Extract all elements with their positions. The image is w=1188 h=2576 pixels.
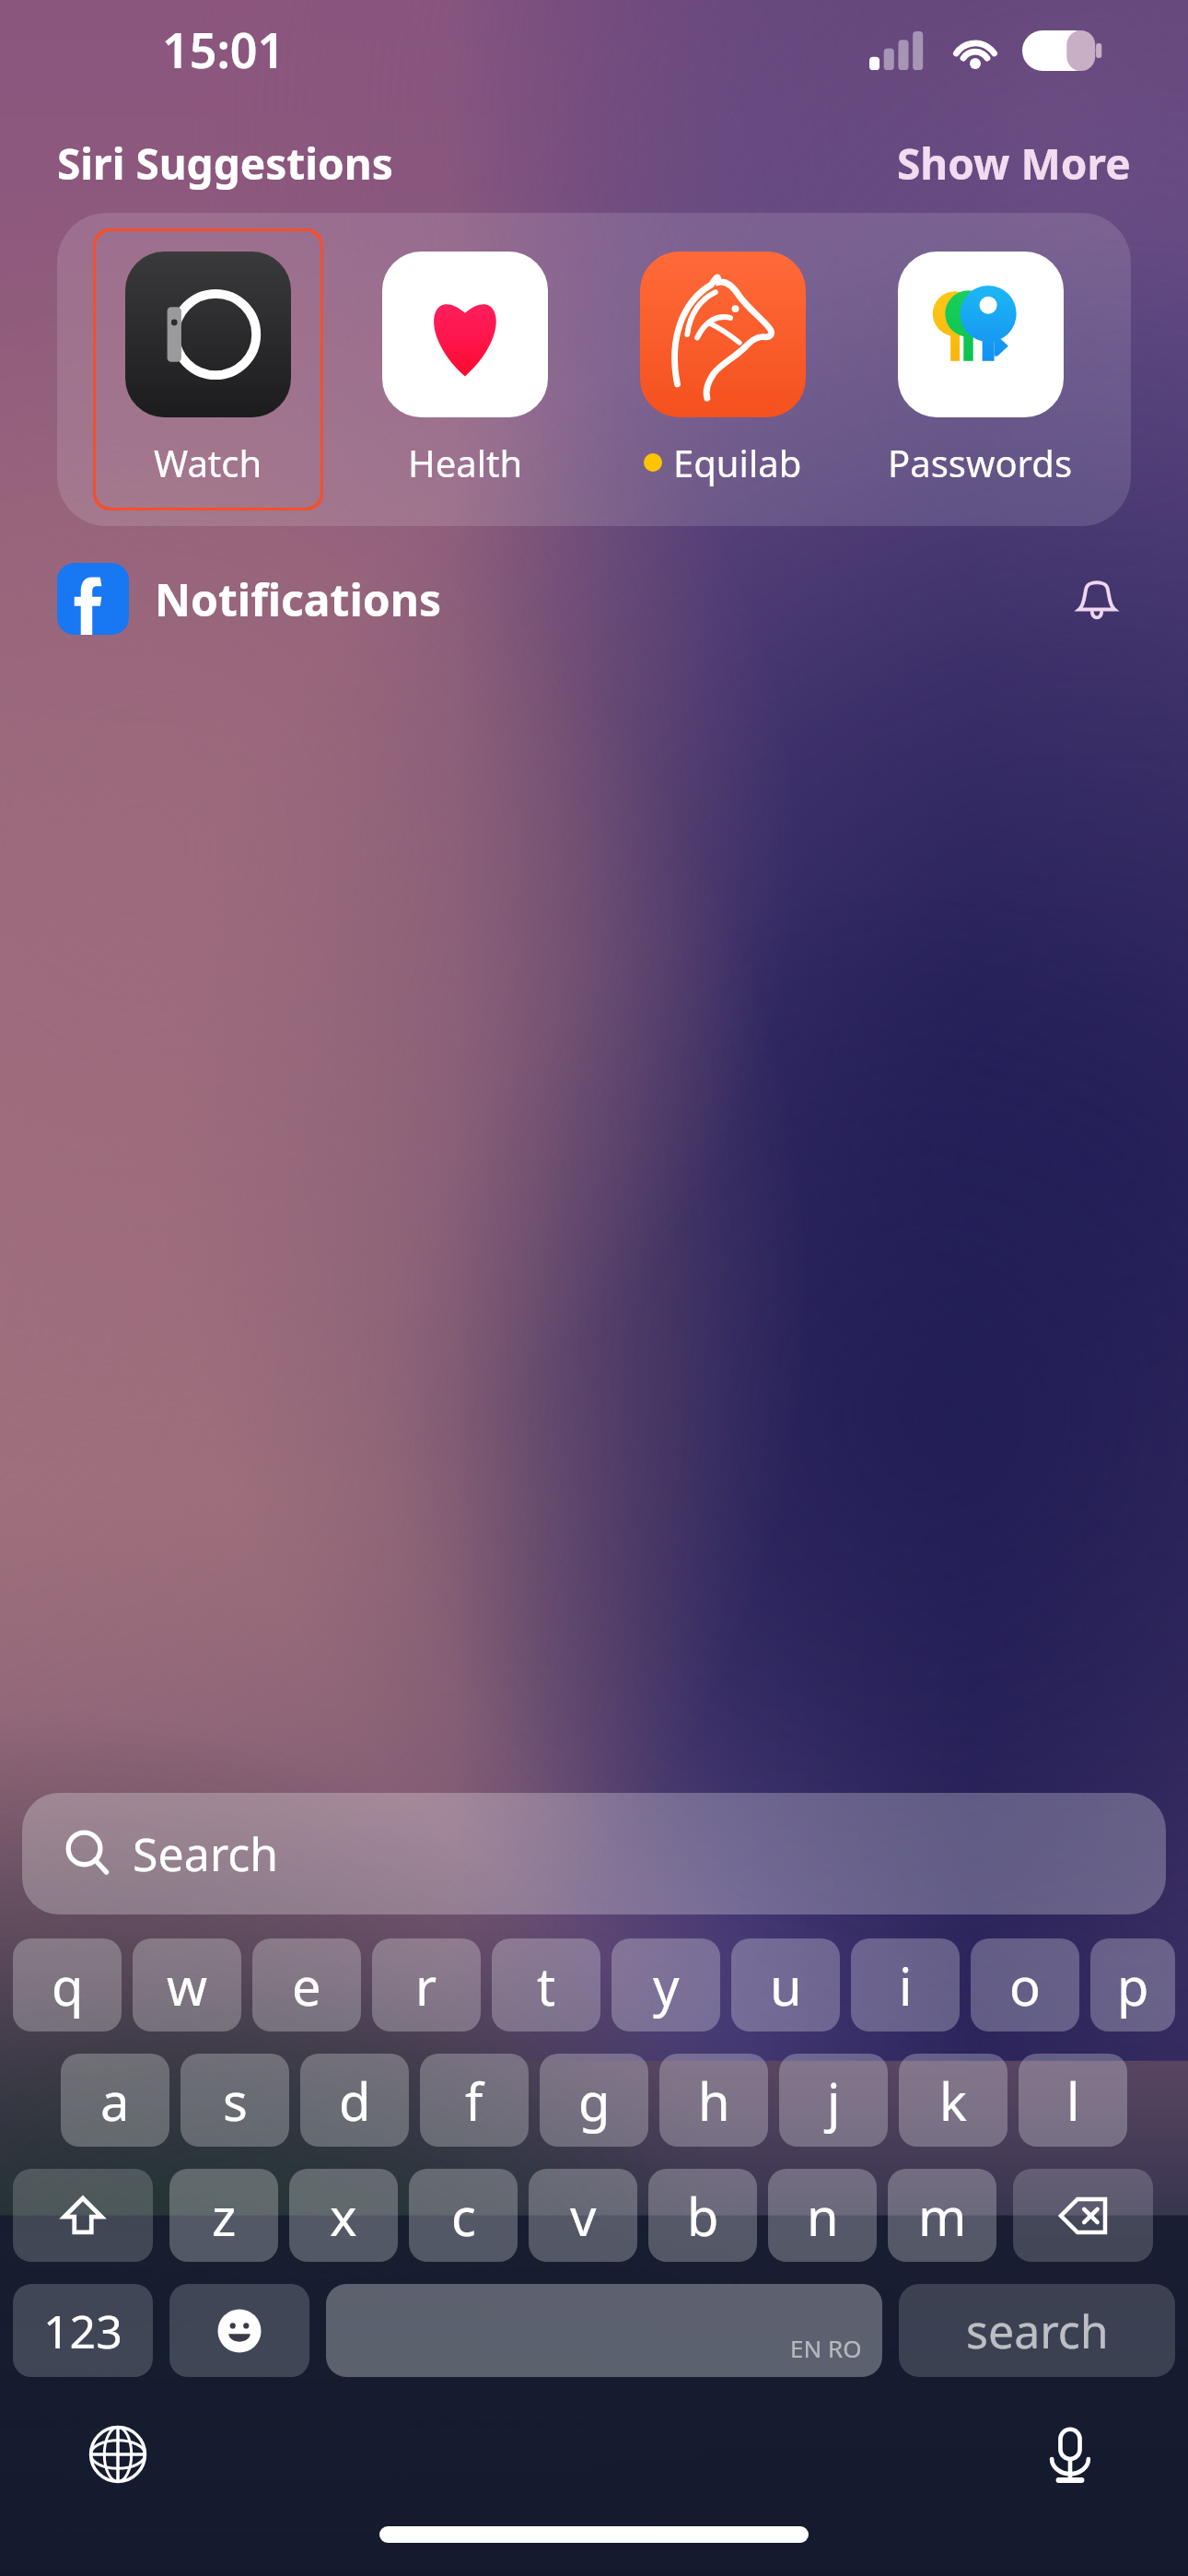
button[interactable]: n [768, 2169, 877, 2262]
staticText: v [570, 2181, 597, 2251]
staticText: q [52, 1950, 84, 2020]
button[interactable]: z [169, 2169, 278, 2262]
staticText: e [292, 1950, 321, 2020]
button[interactable]: m [888, 2169, 996, 2262]
staticText: Notifications [155, 569, 442, 629]
button[interactable]: Equilab [608, 228, 838, 510]
staticText: n [807, 2181, 839, 2251]
button[interactable]: c [409, 2169, 518, 2262]
button[interactable]: Passwords [865, 228, 1095, 510]
button[interactable]: q [13, 1938, 122, 2032]
staticText: Watch [154, 438, 262, 487]
button[interactable]: p [1090, 1938, 1175, 2032]
button[interactable]: i [851, 1938, 960, 2032]
staticText: g [578, 2066, 611, 2136]
button[interactable]: Health [350, 228, 580, 510]
button[interactable]: e [252, 1938, 361, 2032]
staticText: o [1009, 1950, 1041, 2020]
button[interactable]: k [899, 2054, 1007, 2147]
button[interactable]: y [611, 1938, 720, 2032]
staticText: w [167, 1950, 208, 2020]
staticText: EN RO [790, 2332, 862, 2364]
button[interactable]: f [420, 2054, 529, 2147]
button[interactable]: t [492, 1938, 600, 2032]
button[interactable]: Delete [1013, 2169, 1153, 2262]
staticText: i [899, 1950, 913, 2020]
staticText: l [1066, 2066, 1080, 2136]
button[interactable]: u [731, 1938, 840, 2032]
staticText: 15:01 [162, 17, 285, 82]
staticText: k [939, 2066, 967, 2136]
button[interactable]: Dictation [1031, 2416, 1109, 2493]
button[interactable]: s [181, 2054, 289, 2147]
staticText: 123 [43, 2300, 122, 2362]
staticText: s [223, 2066, 248, 2136]
staticText: search [966, 2300, 1109, 2362]
staticText: Health [408, 438, 523, 487]
staticText: r [415, 1950, 437, 2020]
button[interactable]: r [372, 1938, 481, 2032]
button[interactable]: Notification settings [1063, 565, 1131, 633]
button[interactable]: l [1019, 2054, 1127, 2147]
staticText: f [465, 2066, 483, 2136]
button[interactable]: Watch [93, 228, 323, 510]
staticText: z [212, 2181, 237, 2251]
staticText: d [339, 2066, 371, 2136]
button[interactable]: a [61, 2054, 169, 2147]
button[interactable]: g [540, 2054, 648, 2147]
button[interactable]: EN RO [326, 2284, 882, 2377]
staticText: c [451, 2181, 476, 2251]
button[interactable]: j [779, 2054, 888, 2147]
staticText: a [100, 2066, 130, 2136]
staticText: Siri Suggestions [57, 135, 393, 193]
staticText: p [1117, 1950, 1149, 2020]
button[interactable]: d [300, 2054, 409, 2147]
button[interactable]: search [899, 2284, 1175, 2377]
staticText: x [330, 2181, 357, 2251]
button[interactable]: Search [22, 1793, 1166, 1914]
button[interactable]: Notifications [57, 563, 1131, 635]
button[interactable]: Shift [13, 2169, 153, 2262]
button[interactable]: b [648, 2169, 757, 2262]
staticText: h [698, 2066, 730, 2136]
staticText: t [537, 1950, 556, 2020]
button[interactable]: Show More [897, 135, 1131, 193]
button[interactable]: h [659, 2054, 768, 2147]
staticText: u [770, 1950, 802, 2020]
button[interactable]: Emoji [169, 2284, 309, 2377]
staticText: Passwords [888, 438, 1073, 487]
button[interactable]: w [133, 1938, 241, 2032]
button[interactable]: x [289, 2169, 398, 2262]
staticText: Equilab [673, 438, 802, 487]
button[interactable]: 123 [13, 2284, 153, 2377]
staticText: j [827, 2066, 841, 2136]
button[interactable]: o [971, 1938, 1079, 2032]
button[interactable]: v [529, 2169, 637, 2262]
staticText: Search [133, 1822, 279, 1885]
staticText: m [918, 2181, 967, 2251]
staticText: Show More [897, 135, 1131, 193]
staticText: y [653, 1950, 680, 2020]
button[interactable]: Change keyboard language [79, 2416, 157, 2493]
staticText: b [687, 2181, 719, 2251]
